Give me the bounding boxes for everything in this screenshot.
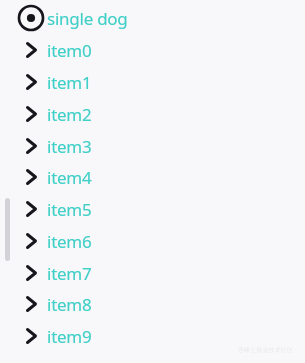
button[interactable]: Expand item1 xyxy=(0,66,305,98)
staticText: item7 xyxy=(47,262,92,285)
button[interactable]: Expand item9 xyxy=(0,320,305,352)
other: Expand item6 xyxy=(26,233,37,249)
staticText: item0 xyxy=(47,39,92,62)
button[interactable]: Selected group xyxy=(0,2,305,34)
staticText: item6 xyxy=(47,230,92,253)
staticText: single dog xyxy=(47,7,128,30)
button[interactable]: Expand item4 xyxy=(0,161,305,193)
staticText: item2 xyxy=(47,103,92,126)
other: Expand item0 xyxy=(26,42,37,58)
other: Expand item7 xyxy=(26,265,37,281)
other: Selected group xyxy=(17,4,45,32)
other: Expand item2 xyxy=(26,106,37,122)
staticText: item4 xyxy=(47,166,92,189)
button[interactable]: Expand item6 xyxy=(0,225,305,257)
button[interactable]: Expand item8 xyxy=(0,288,305,320)
button[interactable]: Expand item2 xyxy=(0,98,305,130)
staticText: item9 xyxy=(47,325,92,348)
button[interactable]: Expand item3 xyxy=(0,130,305,162)
staticText: item5 xyxy=(47,198,92,221)
other: Expand item1 xyxy=(26,74,37,90)
other: Expand item5 xyxy=(26,201,37,217)
staticText: item3 xyxy=(47,135,92,158)
button[interactable]: Expand item0 xyxy=(0,34,305,66)
staticText: @稀土掘金技术社区 xyxy=(238,345,294,353)
other: Expand item4 xyxy=(26,169,37,185)
other: Expand item9 xyxy=(26,328,37,344)
button[interactable]: Expand item7 xyxy=(0,257,305,289)
staticText: item8 xyxy=(47,293,92,316)
staticText: item1 xyxy=(47,71,92,94)
other: Expand item8 xyxy=(26,296,37,312)
button[interactable]: Expand item5 xyxy=(0,193,305,225)
other: Expand item3 xyxy=(26,138,37,154)
